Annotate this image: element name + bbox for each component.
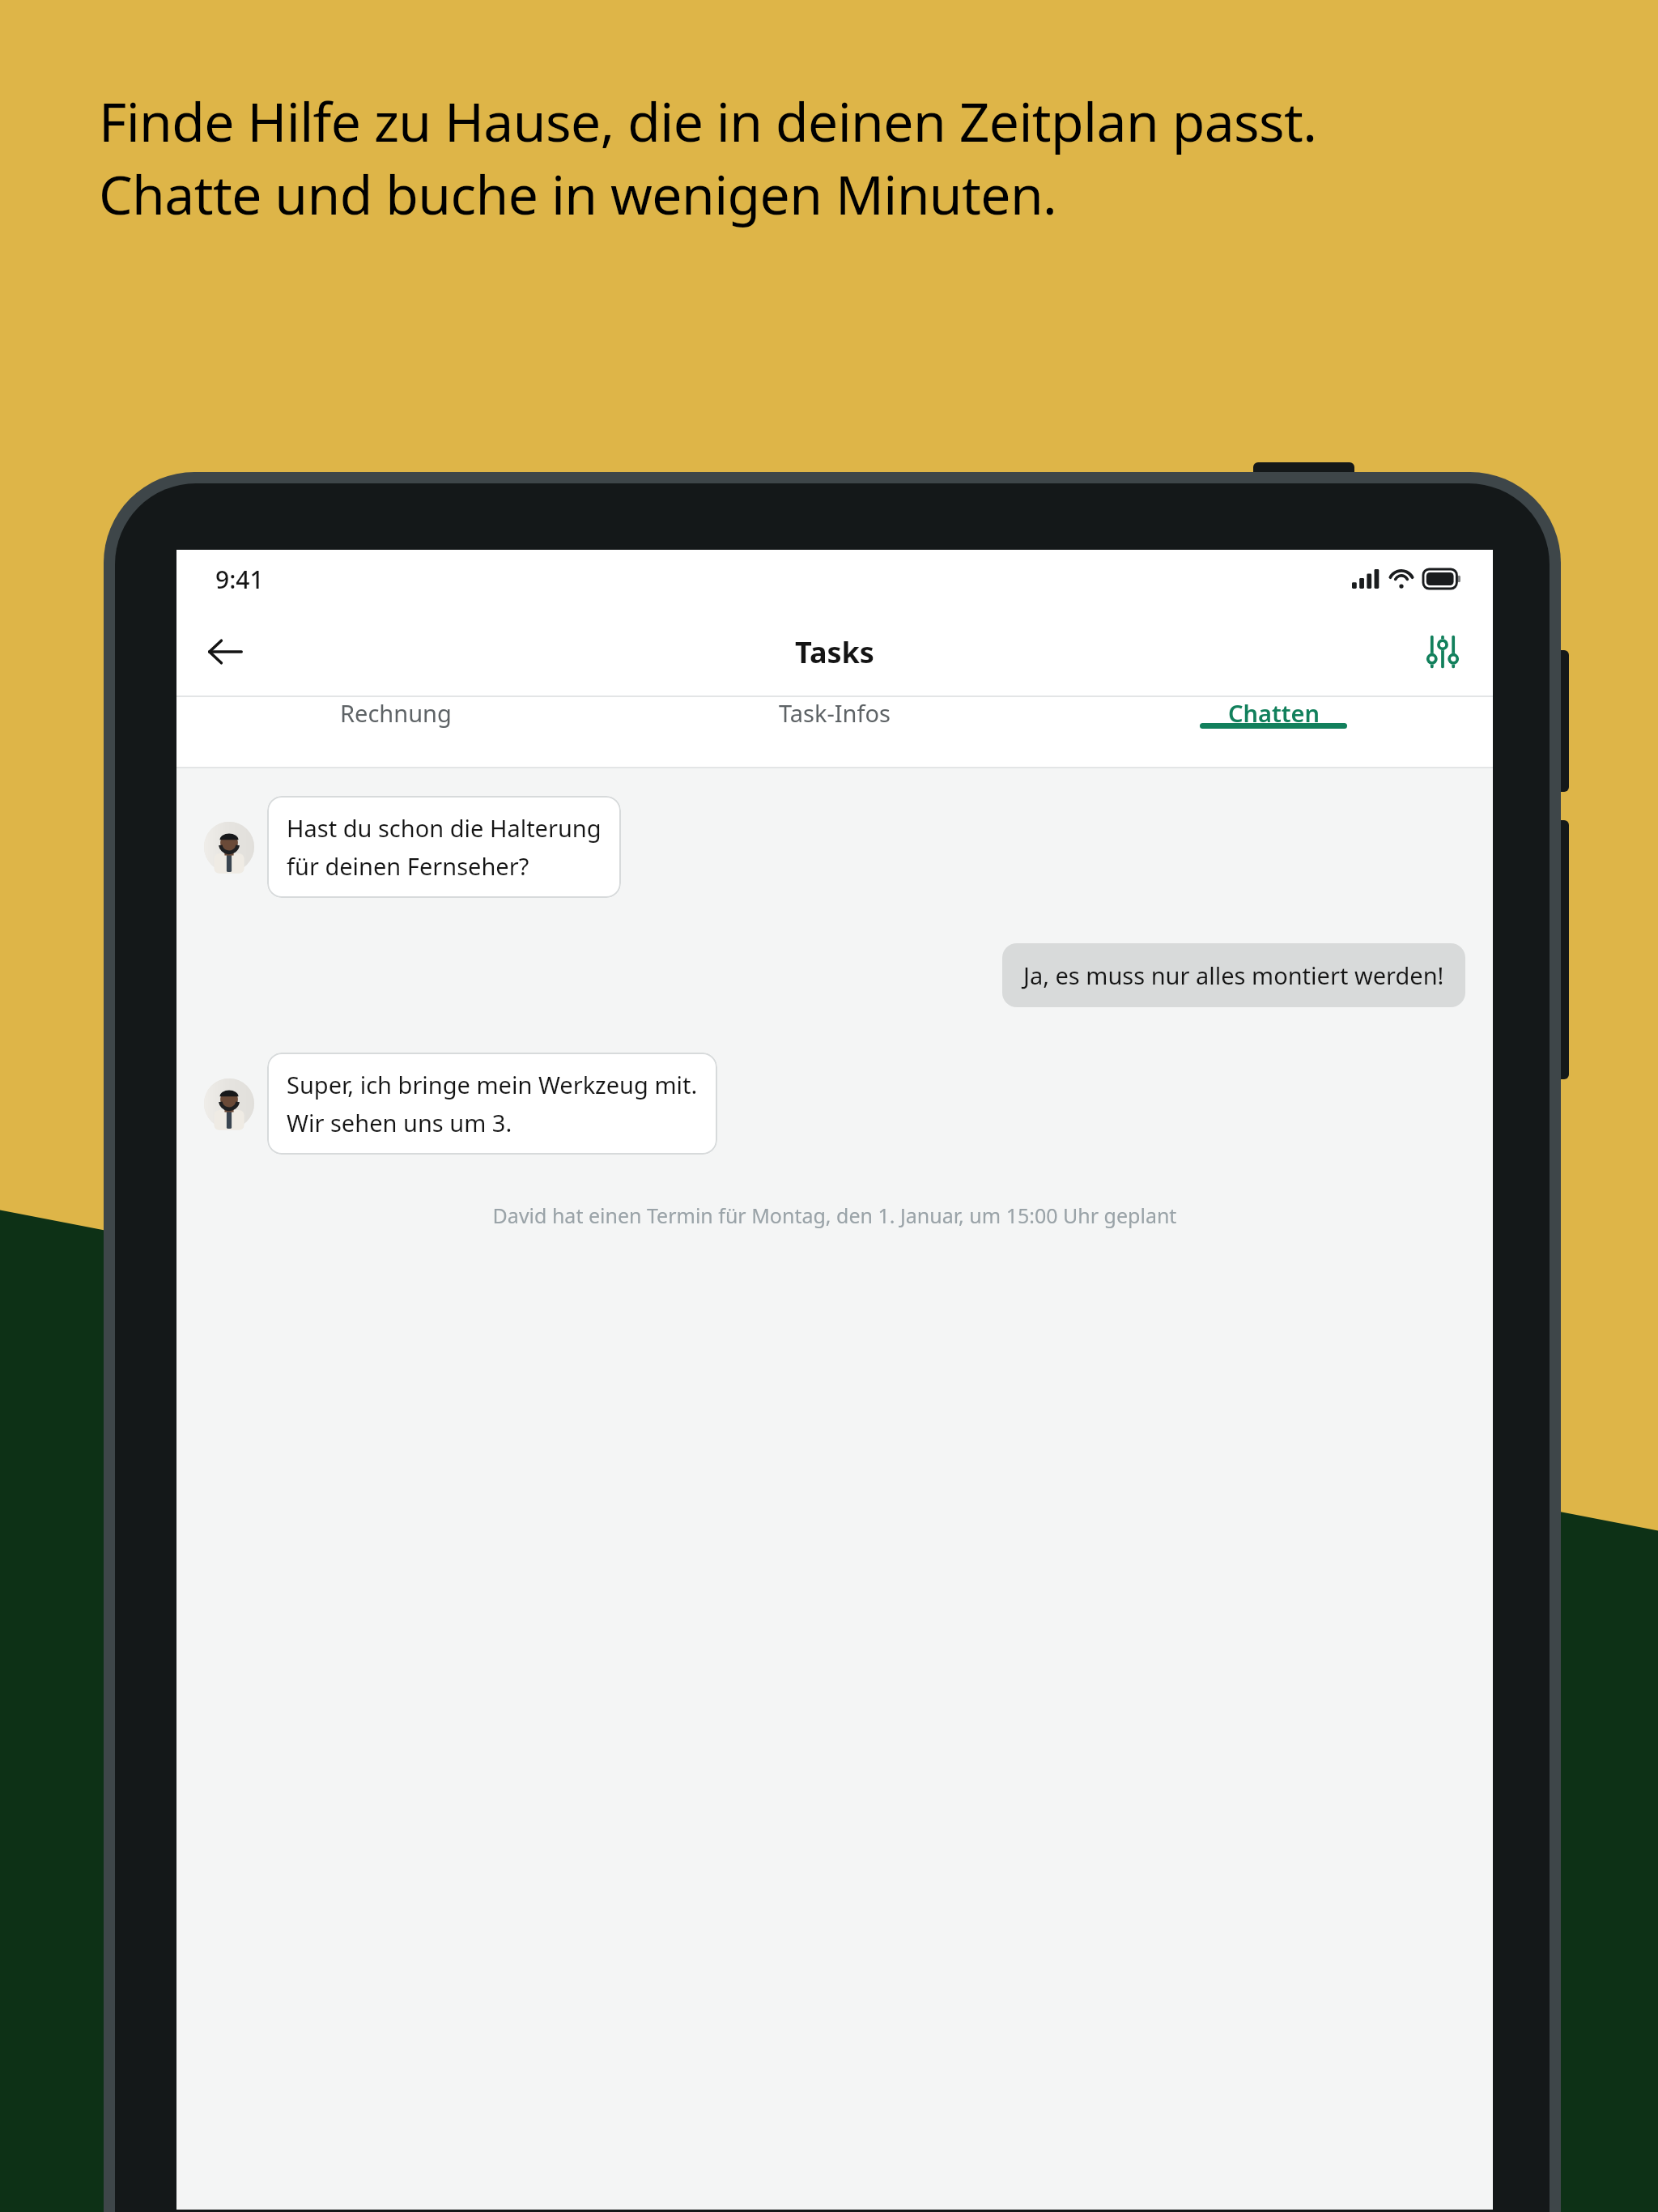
- staticText: David hat einen Termin für Montag, den 1…: [209, 1202, 1460, 1229]
- staticText: 9:41: [215, 563, 264, 596]
- staticText: Super, ich bringe mein Werkzeug mit.: [287, 1069, 698, 1100]
- button[interactable]: Chatten: [1054, 697, 1493, 729]
- staticText: Hast du schon die Halterung: [287, 812, 602, 844]
- button[interactable]: Back: [193, 619, 257, 684]
- staticText: Task-Infos: [779, 697, 891, 729]
- staticText: Ja, es muss nur alles montiert werden!: [1023, 959, 1444, 991]
- button[interactable]: Hast du schon die Halterung: [267, 796, 621, 898]
- button[interactable]: Rechnung: [176, 697, 615, 729]
- button[interactable]: Task-Infos: [615, 697, 1054, 729]
- staticText: Chatten: [1228, 697, 1320, 729]
- button[interactable]: Filter settings: [1410, 619, 1475, 684]
- staticText: Tasks: [795, 632, 874, 672]
- staticText: für deinen Fernseher?: [287, 850, 529, 882]
- staticText: Wir sehen uns um 3.: [287, 1107, 512, 1138]
- button[interactable]: Super, ich bringe mein Werkzeug mit.: [267, 1053, 717, 1155]
- button[interactable]: Ja, es muss nur alles montiert werden!: [1002, 943, 1465, 1007]
- staticText: Finde Hilfe zu Hause, die in deinen Zeit…: [99, 84, 1317, 157]
- staticText: Rechnung: [340, 697, 452, 729]
- staticText: Chatte und buche in wenigen Minuten.: [99, 157, 1057, 230]
